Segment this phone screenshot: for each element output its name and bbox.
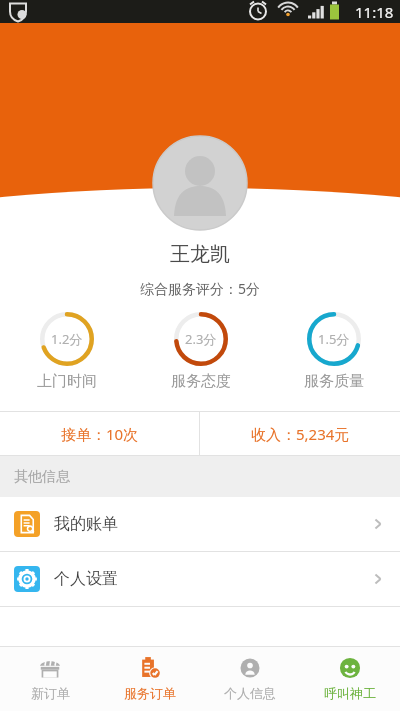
staticText: 王龙凯 bbox=[170, 242, 230, 267]
staticText: 收入：5,234元 bbox=[251, 424, 350, 444]
staticText: 其他信息 bbox=[14, 468, 70, 486]
staticText: 综合服务评分：5分 bbox=[140, 279, 261, 298]
staticText: 服务态度 bbox=[171, 372, 231, 391]
staticText: 1.2分 bbox=[51, 330, 83, 348]
staticText: 呼叫神工 bbox=[324, 685, 376, 701]
button[interactable]: 我的账单 bbox=[0, 497, 400, 551]
button[interactable]: 个人信息 bbox=[200, 647, 300, 711]
button[interactable]: 接单：10次 bbox=[0, 412, 199, 455]
staticText: 新订单 bbox=[31, 685, 70, 701]
staticText: 1.5分 bbox=[318, 330, 350, 348]
staticText: 个人信息 bbox=[224, 685, 276, 701]
staticText: 服务订单 bbox=[124, 685, 176, 701]
staticText: 上门时间 bbox=[37, 372, 97, 391]
button[interactable]: 新订单 bbox=[0, 647, 100, 711]
button[interactable]: 呼叫神工 bbox=[300, 647, 400, 711]
button[interactable]: 个人设置 bbox=[0, 552, 400, 606]
staticText: 接单：10次 bbox=[61, 424, 139, 444]
staticText: 个人设置 bbox=[54, 569, 370, 589]
staticText: 11:18 bbox=[355, 2, 394, 22]
button[interactable]: 服务订单 bbox=[100, 647, 200, 711]
staticText: 服务质量 bbox=[304, 372, 364, 391]
staticText: 2.3分 bbox=[185, 330, 217, 348]
staticText: 我的账单 bbox=[54, 514, 370, 534]
button[interactable]: 收入：5,234元 bbox=[200, 412, 400, 455]
